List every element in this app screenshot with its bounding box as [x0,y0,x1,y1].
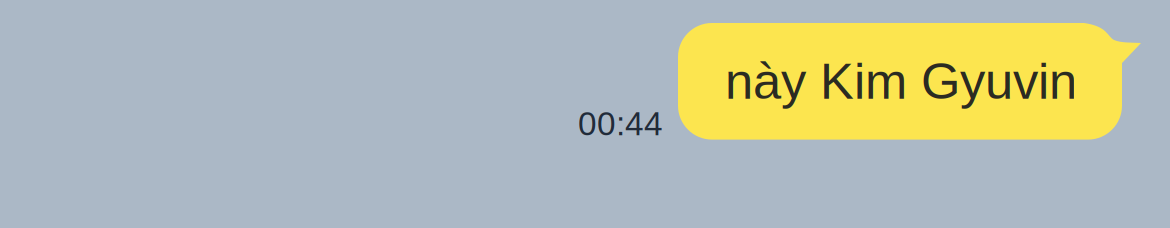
staticText: 00:44 [578,105,663,142]
button[interactable]: này Kim Gyuvin [678,23,1141,140]
staticText: này Kim Gyuvin [725,53,1077,110]
button[interactable]: 00:44 [578,105,663,142]
